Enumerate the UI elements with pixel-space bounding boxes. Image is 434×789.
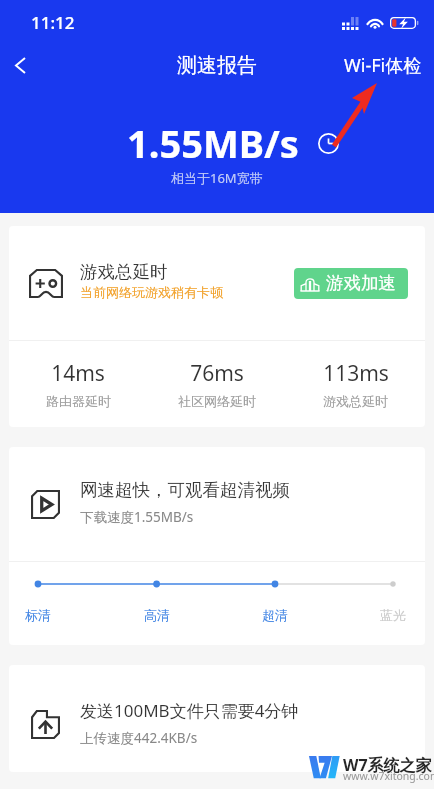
staticText: Wi-Fi体检 — [344, 53, 422, 78]
staticText: 路由器延时 — [46, 393, 111, 409]
button[interactable]: 网速超快，可观看超清视频 — [31, 447, 408, 561]
button[interactable]: 游戏总延时 — [29, 226, 408, 340]
button[interactable]: 蓝光 — [373, 607, 413, 623]
staticText: W7系统之家 — [343, 754, 432, 776]
button[interactable]: Wi-Fi体检 — [344, 53, 422, 78]
button[interactable]: 超清 — [255, 607, 295, 623]
staticText: 下载速度1.55MB/s — [80, 508, 194, 526]
staticText: 发送100MB文件只需要4分钟 — [80, 699, 299, 722]
staticText: 游戏总延时 — [80, 261, 168, 283]
staticText: 网速超快，可观看超清视频 — [80, 479, 290, 501]
staticText: 高清 — [144, 607, 170, 623]
staticText: 14ms — [51, 359, 105, 388]
staticText: www.w7xitong.com — [343, 769, 434, 783]
staticText: 相当于16M宽带 — [171, 169, 263, 187]
staticText: 游戏加速 — [326, 272, 396, 294]
button[interactable]: Back — [0, 45, 40, 85]
button[interactable]: 游戏加速 — [294, 268, 408, 299]
staticText: 游戏总延时 — [323, 393, 388, 409]
staticText: 113ms — [323, 359, 389, 388]
staticText: 上传速度442.4KB/s — [80, 729, 198, 747]
button[interactable]: 113ms — [286, 341, 425, 427]
button[interactable]: 14ms — [9, 341, 147, 427]
staticText: 社区网络延时 — [178, 393, 256, 409]
staticText: 蓝光 — [380, 607, 406, 623]
button[interactable]: 高清 — [137, 607, 177, 623]
button[interactable]: 标清 — [18, 607, 58, 623]
staticText: 当前网络玩游戏稍有卡顿 — [80, 284, 223, 300]
staticText: 标清 — [25, 607, 51, 623]
button[interactable]: Test history — [318, 133, 339, 154]
staticText: 1.55MB/s — [127, 117, 299, 169]
button[interactable]: 发送100MB文件只需要4分钟 — [31, 665, 408, 772]
staticText: 76ms — [190, 359, 244, 388]
staticText: 超清 — [262, 607, 288, 623]
button[interactable]: 76ms — [147, 341, 286, 427]
staticText: 11:12 — [31, 11, 75, 34]
staticText: 测速报告 — [177, 53, 257, 78]
